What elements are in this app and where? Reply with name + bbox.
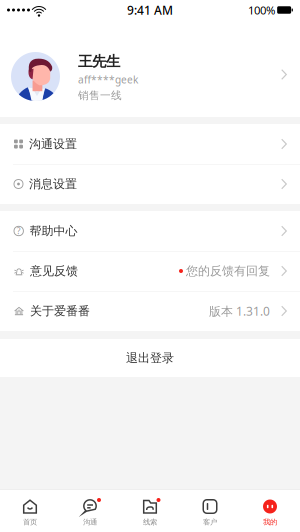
button[interactable]: ?: [0, 211, 300, 251]
staticText: 消息设置: [29, 176, 77, 191]
staticText: 沟通设置: [29, 136, 77, 151]
staticText: 销售一线: [78, 89, 122, 102]
button[interactable]: 意见反馈: [0, 251, 300, 291]
staticText: 线索: [143, 517, 157, 527]
staticText: 您的反馈有回复: [186, 263, 270, 278]
staticText: 帮助中心: [29, 223, 77, 238]
staticText: 意见反馈: [30, 263, 78, 278]
button[interactable]: 关于爱番番: [0, 291, 300, 331]
button[interactable]: 退出登录: [0, 339, 300, 377]
staticText: 9:41 AM: [127, 2, 173, 18]
staticText: ?: [17, 225, 21, 237]
button[interactable]: 王先生: [0, 20, 300, 117]
button[interactable]: 首页: [0, 490, 60, 532]
staticText: 退出登录: [126, 350, 174, 365]
button[interactable]: 消息设置: [0, 164, 300, 204]
staticText: aff****geek: [78, 73, 138, 86]
staticText: 客户: [203, 517, 217, 527]
button[interactable]: 沟通: [60, 490, 120, 532]
button[interactable]: 沟通设置: [0, 124, 300, 164]
staticText: 版本 1.31.0: [209, 303, 270, 319]
staticText: 关于爱番番: [30, 303, 90, 318]
button[interactable]: 线索: [120, 490, 180, 532]
button[interactable]: 客户: [180, 490, 240, 532]
staticText: 沟通: [83, 517, 97, 527]
staticText: 首页: [23, 517, 37, 527]
staticText: 100%: [248, 2, 275, 18]
staticText: 我的: [263, 517, 277, 527]
staticText: 王先生: [78, 52, 120, 71]
button[interactable]: 我的: [240, 490, 300, 532]
